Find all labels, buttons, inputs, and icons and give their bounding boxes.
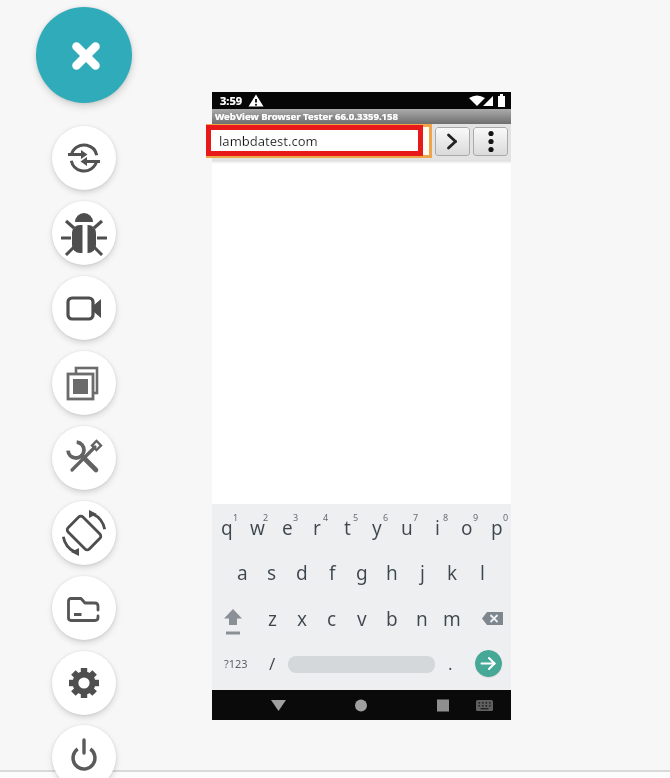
staticText: t [344,515,351,541]
button[interactable] [52,725,116,778]
button[interactable] [435,127,470,156]
staticText: c [327,606,337,632]
button[interactable] [346,690,376,720]
staticText: 5 [353,511,359,523]
button[interactable]: c [317,605,347,633]
button[interactable]: i [422,514,452,542]
staticText: f [329,560,336,586]
button[interactable]: g [347,559,377,587]
staticText: 3 [293,511,299,523]
button[interactable]: q [212,514,242,542]
button[interactable]: d [287,559,317,587]
button[interactable] [52,426,116,490]
staticText: 7 [413,511,419,523]
staticText: z [268,606,277,632]
button[interactable] [52,276,116,340]
staticText: x [297,606,308,632]
button[interactable] [52,651,116,715]
staticText: 8 [443,511,449,523]
staticText: q [221,515,233,541]
staticText: p [491,515,503,541]
staticText: / [269,652,276,675]
button[interactable]: . [440,649,460,677]
button[interactable]: p [482,514,512,542]
button[interactable]: f [317,559,347,587]
staticText: s [267,560,277,586]
staticText: . [448,652,453,675]
staticText: 1 [233,511,239,523]
staticText: e [282,515,293,541]
staticText: WebView Browser Tester 66.0.3359.158 [215,110,399,123]
button[interactable] [52,576,116,640]
button[interactable]: l [467,559,497,587]
button[interactable]: z [257,605,287,633]
staticText: 9 [473,511,479,523]
button[interactable]: v [347,605,377,633]
staticText: m [443,606,461,632]
staticText: v [357,606,367,632]
button[interactable]: k [437,559,467,587]
staticText: g [356,560,368,586]
staticText: o [461,515,473,541]
button[interactable]: ?123 [220,651,252,675]
button[interactable]: e [272,514,302,542]
button[interactable]: t [332,514,362,542]
button[interactable] [428,690,458,720]
button[interactable]: n [407,605,437,633]
staticText: lambdatest.com [219,132,318,150]
button[interactable] [52,126,116,190]
staticText: 2 [263,511,269,523]
button[interactable]: a [227,559,257,587]
button[interactable]: y [362,514,392,542]
staticText: l [480,560,485,586]
button[interactable]: o [452,514,482,542]
button[interactable]: j [407,559,437,587]
button[interactable]: u [392,514,422,542]
button[interactable] [478,606,510,632]
button[interactable] [36,7,132,103]
staticText: h [386,560,398,586]
staticText: n [416,606,428,632]
button[interactable] [264,690,294,720]
staticText: ?123 [224,656,248,671]
button[interactable] [52,501,116,565]
button[interactable]: lambdatest.com [206,125,423,156]
staticText: b [386,606,398,632]
button[interactable] [217,602,249,642]
staticText: 3:59 [220,93,242,108]
button[interactable]: w [242,514,272,542]
button[interactable]: / [260,649,284,677]
button[interactable]: s [257,559,287,587]
staticText: d [296,560,308,586]
staticText: k [447,560,458,586]
button[interactable] [475,650,502,677]
staticText: y [372,515,382,541]
staticText: u [401,515,413,541]
staticText: w [250,515,265,541]
button[interactable]: m [437,605,467,633]
button[interactable]: x [287,605,317,633]
staticText: 0 [503,511,509,523]
staticText: r [313,515,321,541]
button[interactable] [52,351,116,415]
button[interactable]: b [377,605,407,633]
button[interactable] [52,201,116,265]
button[interactable] [288,656,435,673]
button[interactable] [473,127,508,156]
staticText: a [237,560,248,586]
staticText: j [420,560,425,586]
staticText: 4 [323,511,329,523]
staticText: 6 [383,511,389,523]
staticText: i [435,515,440,541]
button[interactable]: h [377,559,407,587]
button[interactable]: r [302,514,332,542]
